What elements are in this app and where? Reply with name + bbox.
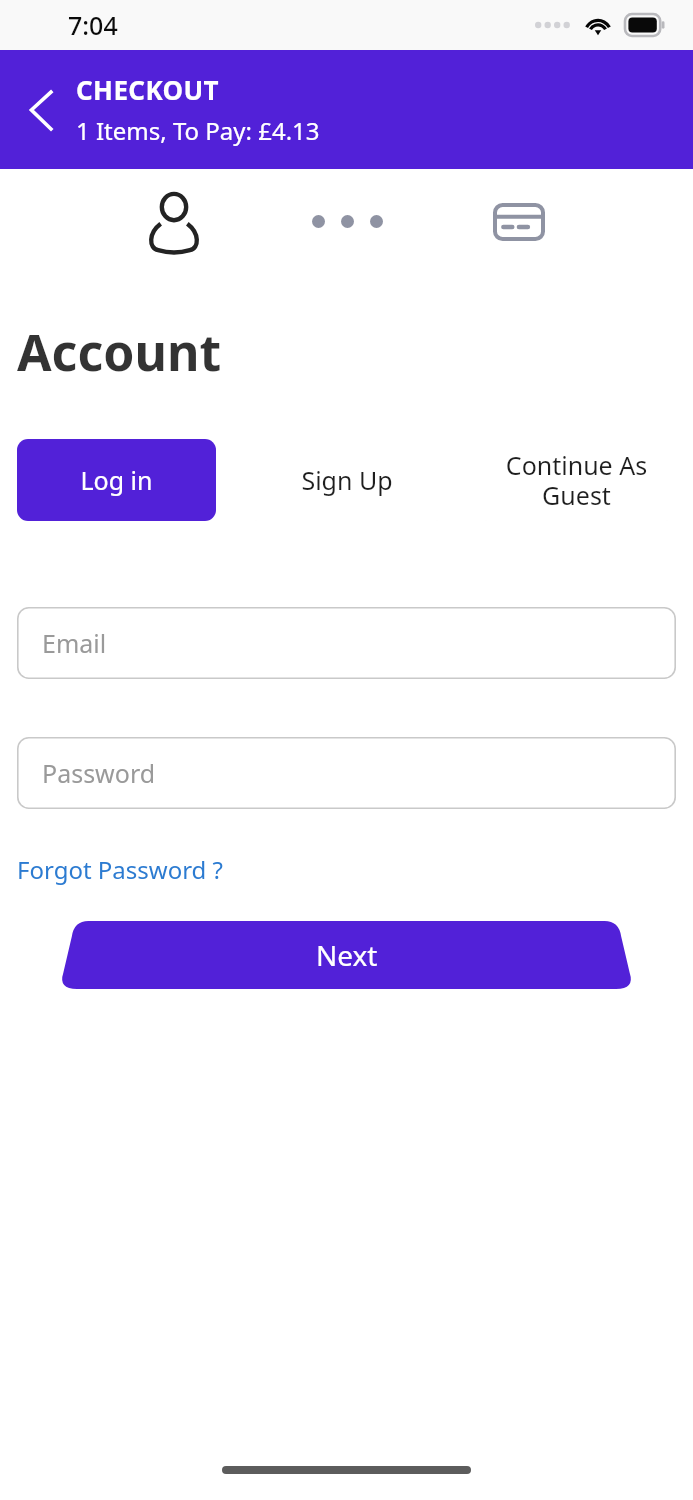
other: Account step — [145, 192, 203, 252]
staticText: CHECKOUT — [76, 72, 220, 107]
button[interactable]: Sign Up — [247, 439, 446, 521]
staticText: Log in — [80, 463, 153, 497]
staticText: Password — [42, 756, 156, 790]
button[interactable]: Log in — [17, 439, 216, 521]
button[interactable]: Continue As Guest — [477, 439, 676, 521]
button[interactable]: Email — [17, 607, 676, 679]
staticText: Sign Up — [301, 463, 393, 497]
button[interactable]: Next — [58, 921, 635, 989]
staticText: Next — [316, 936, 378, 974]
staticText: Continue As Guest — [477, 448, 676, 512]
staticText: 1 Items, To Pay: £4.13 — [76, 114, 320, 147]
staticText: Forgot Password ? — [17, 853, 224, 886]
other: Payment step — [493, 203, 545, 241]
button[interactable]: Back — [14, 81, 72, 139]
staticText: Email — [42, 626, 107, 660]
button[interactable]: Forgot Password ? — [17, 853, 224, 886]
button[interactable]: Password — [17, 737, 676, 809]
staticText: 7:04 — [68, 8, 118, 42]
staticText: Account — [17, 318, 222, 386]
